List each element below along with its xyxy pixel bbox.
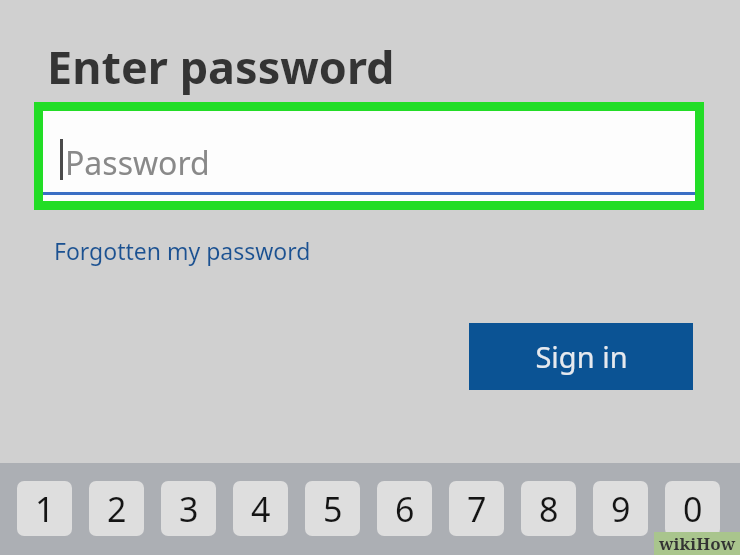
button[interactable]: 4 [233,481,288,536]
button[interactable]: Sign in [469,323,693,390]
staticText: 8 [539,486,559,532]
button[interactable]: 7 [449,481,504,536]
staticText: Password [65,141,210,185]
staticText: 0 [683,486,703,532]
staticText: wikiHow [659,532,736,555]
staticText: Enter password [47,36,395,97]
staticText: 2 [107,486,127,532]
button[interactable]: 1 [17,481,72,536]
staticText: 1 [35,486,55,532]
button[interactable]: 5 [305,481,360,536]
button[interactable]: Forgotten my password [46,230,319,271]
button[interactable]: 0 [665,481,720,536]
button[interactable]: Password [43,111,695,201]
staticText: 7 [467,486,487,532]
staticText: Sign in [535,337,628,376]
button[interactable]: 9 [593,481,648,536]
button[interactable]: 8 [521,481,576,536]
staticText: 9 [611,486,631,532]
staticText: 6 [395,486,415,532]
button[interactable]: 6 [377,481,432,536]
staticText: Forgotten my password [54,235,311,266]
staticText: 3 [179,486,199,532]
other: wikiHow watermark [654,532,740,555]
staticText: 5 [323,486,343,532]
button[interactable]: 3 [161,481,216,536]
staticText: 4 [251,486,271,532]
button[interactable]: 2 [89,481,144,536]
